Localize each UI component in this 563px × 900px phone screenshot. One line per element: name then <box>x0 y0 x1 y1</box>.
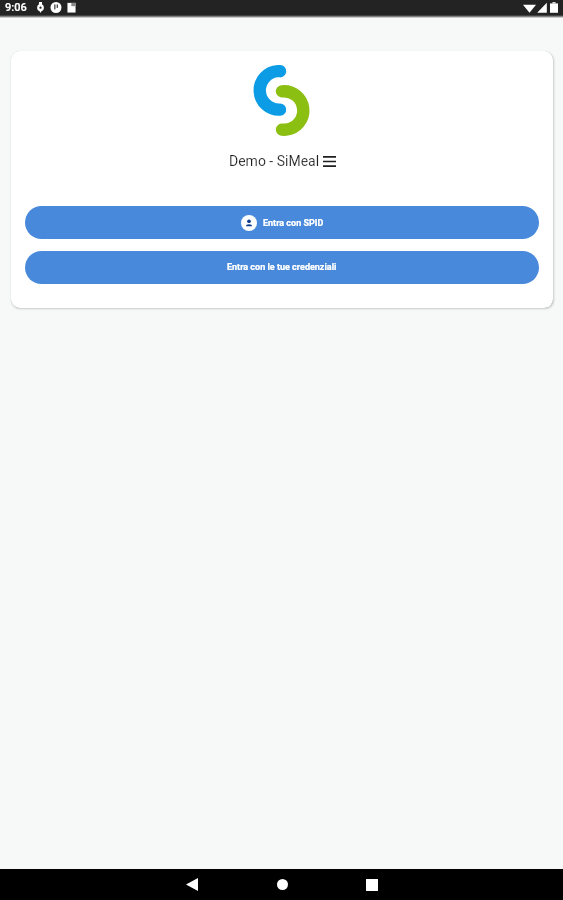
button[interactable]: Home <box>258 869 306 900</box>
button[interactable]: Recent apps <box>348 869 396 900</box>
staticText: Demo - SiMeal <box>229 153 320 169</box>
button[interactable]: Back <box>168 869 216 900</box>
staticText: Entra con SPID <box>263 218 324 229</box>
staticText: 9:06 <box>5 1 27 14</box>
staticText: Entra con le tue credenziali <box>227 262 337 273</box>
button[interactable]: Entra con le tue credenziali <box>25 251 539 284</box>
button[interactable]: Entra con SPID <box>25 206 539 239</box>
